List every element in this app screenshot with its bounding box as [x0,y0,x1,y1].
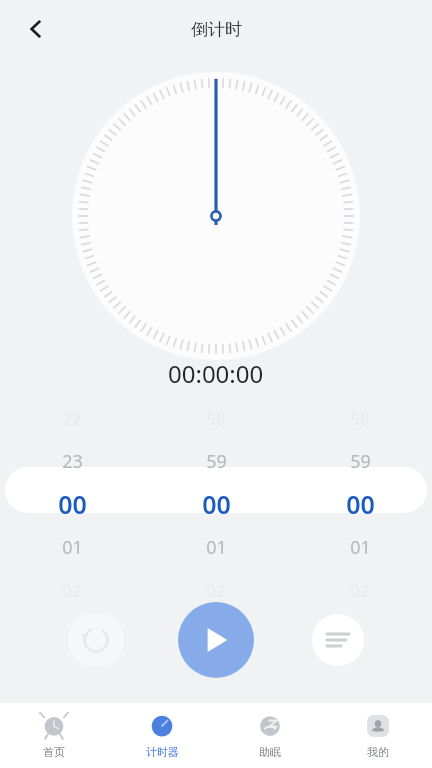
staticText: 23 [62,449,83,474]
staticText: 计时器 [146,745,179,759]
staticText: 我的 [367,745,389,759]
button[interactable]: 首页 [0,703,108,768]
staticText: 01 [62,535,83,560]
button[interactable]: 我的 [324,703,432,768]
staticText: 00 [346,487,375,521]
staticText: 助眠 [259,745,281,759]
staticText: 01 [350,535,371,560]
staticText: 59 [350,449,371,474]
staticText: 首页 [43,745,65,759]
button[interactable]: 22 [0,396,144,588]
staticText: 58 [350,407,370,430]
staticText: 00 [58,487,87,521]
button[interactable]: Start [178,602,254,678]
button[interactable]: 助眠 [216,703,324,768]
staticText: 22 [62,407,82,430]
button[interactable]: 计时器 [108,703,216,768]
button[interactable]: Reset [68,612,124,668]
button[interactable]: 58 [288,396,432,588]
staticText: 倒计时 [191,19,242,40]
button[interactable]: 58 [144,396,288,588]
staticText: 02 [206,579,226,602]
button[interactable]: List [312,614,364,666]
staticText: 02 [62,579,82,602]
staticText: 01 [206,535,227,560]
staticText: 00 [202,487,231,521]
staticText: 58 [206,407,226,430]
staticText: 59 [206,449,227,474]
button[interactable]: Back [14,7,58,51]
staticText: 02 [350,579,370,602]
staticText: 00:00:00 [168,357,264,390]
